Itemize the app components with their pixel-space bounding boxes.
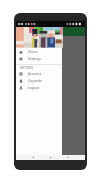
staticText: Home bbox=[28, 49, 38, 54]
staticText: Account bbox=[28, 71, 41, 76]
button[interactable]: Settings bbox=[16, 55, 62, 62]
staticText: Settings bbox=[28, 56, 41, 61]
staticText: SETTINGS bbox=[20, 66, 34, 70]
staticText: Upgrade bbox=[28, 78, 42, 83]
button[interactable]: Account bbox=[16, 70, 62, 77]
button[interactable]: Home bbox=[16, 48, 62, 55]
button[interactable]: Upgrade bbox=[16, 77, 62, 84]
staticText: Logout bbox=[28, 85, 40, 90]
button[interactable]: Logout bbox=[16, 84, 62, 91]
